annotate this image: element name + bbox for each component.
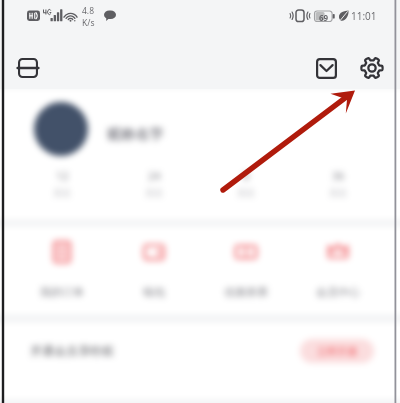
button[interactable]: Mail	[306, 48, 346, 88]
staticText: 8	[243, 168, 250, 183]
button[interactable]: 会员中心	[301, 240, 375, 299]
staticText: 11:01	[351, 9, 377, 23]
staticText: 关注	[145, 187, 163, 198]
staticText: 会员中心	[316, 285, 360, 299]
staticText: 69	[319, 12, 329, 23]
staticText: 4.8	[82, 5, 95, 17]
staticText: 我的订单	[40, 285, 84, 299]
staticText: 钱包	[143, 285, 165, 299]
button[interactable]: 12	[25, 168, 99, 198]
button[interactable]: 钱包	[117, 240, 191, 299]
staticText: 24	[148, 168, 161, 183]
staticText: 昵称名字	[107, 126, 163, 144]
button[interactable]: Settings	[352, 48, 392, 88]
staticText: 关注	[53, 187, 71, 198]
button[interactable]: 我的订单	[25, 240, 99, 299]
button[interactable]: 36	[301, 168, 375, 198]
staticText: 立即开通	[317, 345, 357, 358]
staticText: K/s	[82, 17, 95, 29]
button[interactable]: 昵称名字	[34, 102, 163, 156]
staticText: 36	[332, 168, 345, 183]
button[interactable]: 优惠券票	[209, 240, 283, 299]
staticText: 关注	[237, 187, 255, 198]
staticText: 关注	[329, 187, 347, 198]
staticText: 优惠券票	[224, 285, 268, 299]
staticText: 开通会员享特权	[30, 343, 114, 358]
button[interactable]: 8	[209, 168, 283, 198]
staticText: 12	[56, 168, 69, 183]
button[interactable]: Split screen	[8, 48, 48, 88]
button[interactable]: 24	[117, 168, 191, 198]
button[interactable]: 立即开通	[300, 339, 374, 363]
